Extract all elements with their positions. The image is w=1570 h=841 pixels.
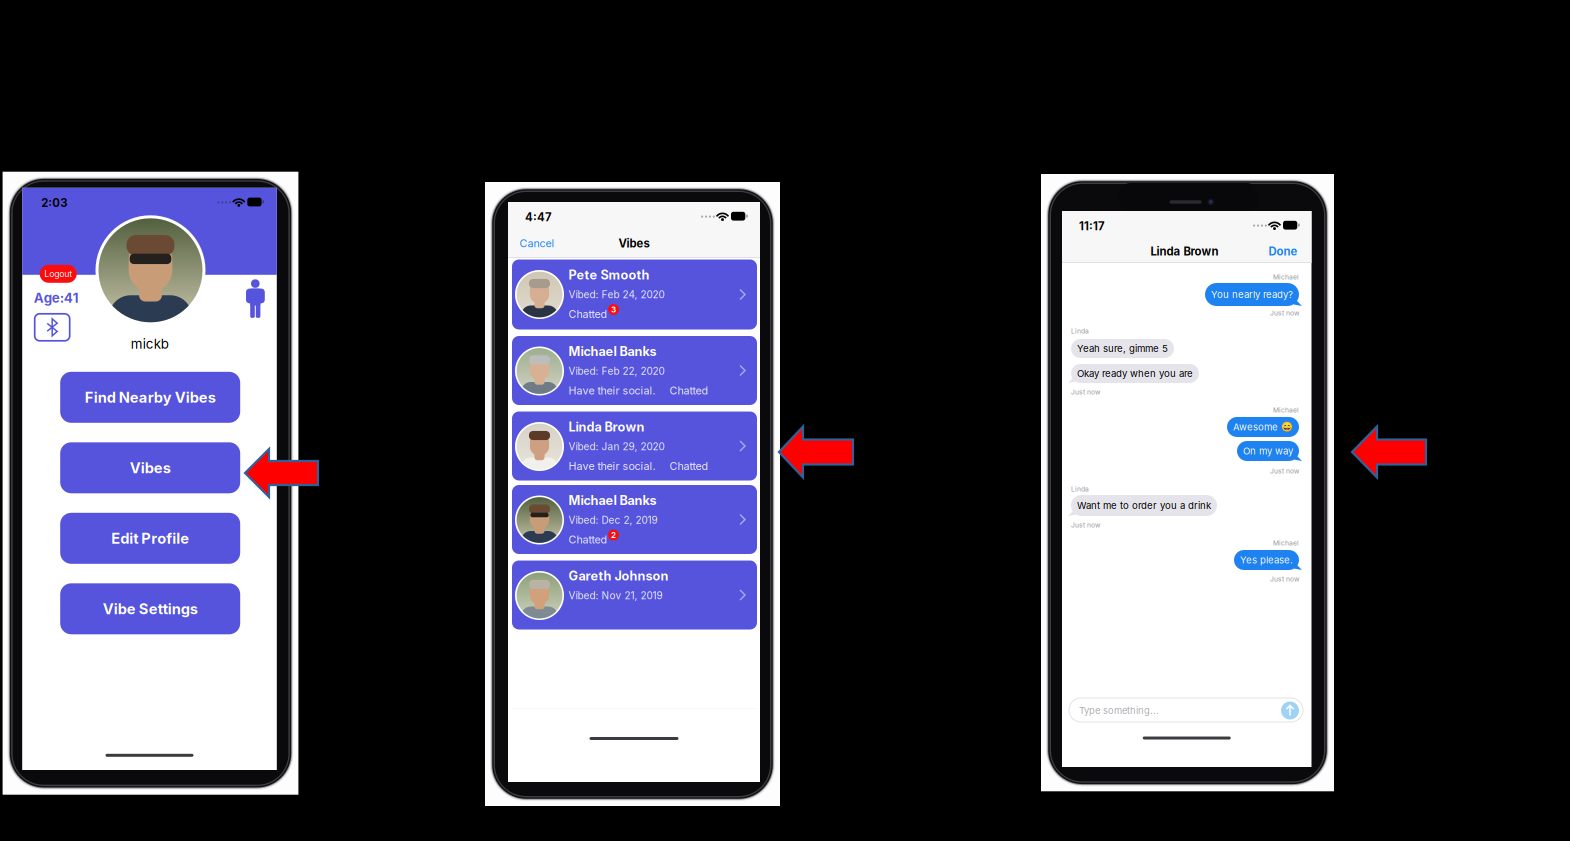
staticText: Vibes bbox=[618, 236, 649, 250]
staticText: Edit Profile bbox=[111, 529, 189, 547]
staticText: Michael bbox=[1273, 273, 1299, 281]
staticText: Okay ready when you are bbox=[1077, 368, 1193, 379]
staticText: Vibes bbox=[130, 459, 171, 477]
button[interactable]: Gareth Johnson bbox=[0, 0, 1570, 841]
staticText: Chatted bbox=[568, 533, 607, 546]
button[interactable]: Vibe Settings bbox=[0, 0, 1570, 841]
button[interactable]: Find Nearby Vibes bbox=[0, 0, 1570, 841]
staticText: Just now bbox=[1071, 521, 1100, 529]
staticText: Age:41 bbox=[34, 290, 79, 306]
staticText: 11:17 bbox=[1079, 219, 1105, 233]
staticText: Just now bbox=[1270, 467, 1299, 475]
staticText: Just now bbox=[1071, 388, 1100, 396]
staticText: Gareth Johnson bbox=[568, 568, 668, 584]
staticText: Chatted bbox=[669, 459, 708, 472]
staticText: Awesome 😄 bbox=[1233, 421, 1293, 433]
staticText: You nearly ready? bbox=[1211, 289, 1293, 300]
staticText: Vibe Settings bbox=[103, 600, 198, 618]
staticText: Yeah sure, gimme 5 bbox=[1077, 343, 1168, 354]
staticText: Vibed: Feb 22, 2020 bbox=[568, 365, 664, 377]
staticText: Done bbox=[1268, 244, 1297, 258]
button[interactable]: Logout bbox=[0, 0, 1570, 841]
staticText: Michael Banks bbox=[568, 493, 656, 508]
staticText: Michael bbox=[1273, 539, 1299, 547]
button[interactable]: Michael Banks bbox=[0, 0, 1570, 841]
staticText: Just now bbox=[1270, 575, 1299, 583]
button[interactable]: Send bbox=[0, 0, 1570, 841]
staticText: Linda Brown bbox=[1150, 244, 1218, 258]
staticText: Linda bbox=[1071, 327, 1089, 335]
staticText: Pete Smooth bbox=[568, 267, 649, 283]
staticText: Chatted bbox=[669, 384, 708, 397]
button[interactable]: Vibes bbox=[0, 0, 1570, 841]
staticText: On my way bbox=[1243, 445, 1293, 457]
staticText: Want me to order you a drink bbox=[1077, 500, 1211, 511]
button[interactable]: Michael Banks bbox=[0, 0, 1570, 841]
staticText: Linda Brown bbox=[568, 419, 644, 435]
staticText: Vibed: Dec 2, 2019 bbox=[568, 514, 657, 526]
button[interactable]: Pete Smooth bbox=[0, 0, 1570, 841]
staticText: Have their social. bbox=[568, 459, 655, 472]
staticText: Vibed: Nov 21, 2019 bbox=[568, 589, 662, 602]
staticText: 3 bbox=[611, 305, 616, 314]
staticText: Logout bbox=[44, 269, 72, 279]
staticText: Vibed: Jan 29, 2020 bbox=[568, 440, 664, 453]
staticText: Have their social. bbox=[568, 384, 655, 397]
staticText: 2:03 bbox=[41, 196, 67, 210]
staticText: Linda bbox=[1071, 485, 1089, 493]
staticText: Find Nearby Vibes bbox=[85, 388, 216, 406]
staticText: Type something... bbox=[1079, 705, 1159, 716]
staticText: Just now bbox=[1270, 309, 1299, 317]
button[interactable]: Edit Profile bbox=[0, 0, 1570, 841]
staticText: 2 bbox=[611, 530, 616, 540]
staticText: 4:47 bbox=[525, 210, 552, 224]
staticText: mickb bbox=[131, 336, 169, 352]
staticText: Chatted bbox=[568, 307, 607, 320]
button[interactable]: Done bbox=[0, 0, 1570, 841]
button[interactable]: Linda Brown bbox=[0, 0, 1570, 841]
staticText: Vibed: Feb 24, 2020 bbox=[568, 288, 664, 301]
staticText: Michael Banks bbox=[568, 344, 656, 359]
staticText: Yes please. bbox=[1240, 554, 1293, 566]
button[interactable]: Cancel bbox=[0, 0, 1570, 841]
button[interactable]: Bluetooth bbox=[0, 0, 1570, 841]
staticText: Cancel bbox=[519, 237, 554, 250]
staticText: Michael bbox=[1273, 406, 1299, 414]
